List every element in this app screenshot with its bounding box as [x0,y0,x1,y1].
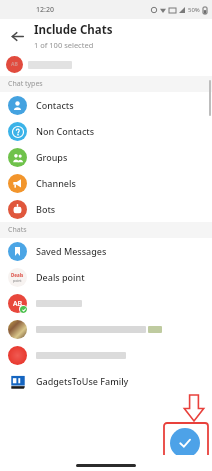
staticText: 50% [188,6,200,14]
staticText: Chat types [8,79,43,89]
staticText: Deals point [36,271,85,283]
button[interactable]: Non Contacts [0,118,212,144]
staticText: Bots [36,203,56,215]
staticText: 12:20 [36,5,54,15]
button[interactable]: Deals [0,264,212,290]
staticText: Include Chats [34,22,113,38]
staticText: Chats [8,225,27,235]
staticText: Channels [36,177,76,189]
button[interactable]: AB [0,53,212,76]
button[interactable] [0,316,212,342]
staticText: Groups [36,151,68,163]
staticText: point [13,278,22,283]
staticText: Deals [11,272,24,278]
button[interactable]: Bots [0,196,212,222]
button[interactable]: Saved Messages [0,238,212,264]
staticText: GadgetsToUse Family [36,375,129,387]
button[interactable]: Back [0,19,34,53]
staticText: Contacts [36,99,74,111]
button[interactable]: Channels [0,170,212,196]
staticText: Saved Messages [36,245,107,257]
staticText: Non Contacts [36,125,95,137]
button[interactable]: GadgetsToUse Family [0,368,212,394]
staticText: AB [11,61,18,68]
button[interactable]: Contacts [0,92,212,118]
staticText: 1 of 100 selected [34,40,94,50]
staticText: AB [13,299,23,309]
button[interactable]: Confirm selection [170,428,200,458]
button[interactable] [0,342,212,368]
button[interactable]: Groups [0,144,212,170]
button[interactable]: AB [0,290,212,316]
